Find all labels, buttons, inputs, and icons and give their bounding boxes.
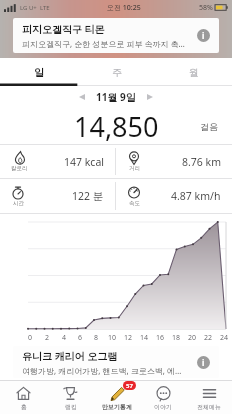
- staticText: 0: [28, 333, 33, 343]
- staticText: 속도: [129, 200, 140, 207]
- staticText: i: [202, 30, 205, 41]
- staticText: 월: [189, 66, 199, 79]
- staticText: 피지오겔직구 티몬: [22, 22, 105, 36]
- staticText: i: [202, 357, 205, 368]
- staticText: 57: [126, 382, 133, 390]
- button[interactable]: 유니크 캐리어 오그램: [13, 346, 219, 378]
- staticText: 147 kcal: [64, 155, 104, 169]
- staticText: 12: [124, 333, 133, 343]
- staticText: 2: [45, 333, 50, 343]
- button[interactable]: 속도: [116, 179, 232, 213]
- staticText: 16: [156, 333, 165, 343]
- staticText: 거리: [129, 165, 140, 172]
- button[interactable]: 랭킹: [47, 381, 94, 414]
- staticText: 6: [78, 333, 83, 343]
- staticText: 8.76 km: [182, 155, 221, 169]
- button[interactable]: 피지오겔직구 티몬: [13, 18, 219, 53]
- staticText: 22: [204, 333, 213, 343]
- staticText: 랭킹: [65, 403, 77, 411]
- button[interactable]: 거리: [116, 145, 232, 178]
- staticText: 유니크 캐리어 오그램: [22, 349, 118, 363]
- staticText: 24: [220, 333, 229, 343]
- staticText: 시간: [13, 200, 24, 207]
- staticText: 걸음: [200, 121, 218, 132]
- staticText: 오전 10:25: [107, 3, 141, 13]
- button[interactable]: 광고 정보: [197, 29, 210, 42]
- button[interactable]: 시간: [0, 179, 115, 213]
- staticText: 10: [108, 333, 117, 343]
- staticText: 4.87 km/h: [171, 189, 221, 203]
- button[interactable]: 57: [94, 381, 140, 414]
- staticText: 11월 9일: [96, 90, 136, 104]
- staticText: LG U+ LTE: [20, 4, 50, 12]
- button[interactable]: 다음 날짜: [141, 88, 159, 106]
- button[interactable]: 이야기: [140, 381, 186, 414]
- staticText: 8: [94, 333, 99, 343]
- staticText: 홈: [21, 403, 27, 411]
- staticText: 피지오겔직구, 순한 성분으로 피부 속까지 촉…: [22, 38, 185, 49]
- staticText: 58%: [199, 3, 213, 13]
- staticText: 일: [34, 66, 44, 79]
- button[interactable]: 이전 날짜: [73, 88, 91, 106]
- staticText: 4: [62, 333, 67, 343]
- staticText: 여행가방, 캐리어가방, 핸드백, 크로스백, 에…: [22, 365, 182, 376]
- staticText: 이야기: [154, 403, 172, 411]
- button[interactable]: 광고 정보: [197, 356, 210, 369]
- button[interactable]: 칼로리: [0, 145, 115, 178]
- button[interactable]: 전체메뉴: [186, 381, 232, 414]
- staticText: 주: [112, 66, 122, 79]
- staticText: 14: [140, 333, 149, 343]
- button[interactable]: 주: [78, 58, 155, 86]
- staticText: 칼로리: [11, 165, 28, 172]
- staticText: 전체메뉴: [197, 403, 221, 411]
- staticText: 122 분: [72, 189, 104, 203]
- button[interactable]: 홈: [0, 381, 47, 414]
- button[interactable]: 일: [0, 58, 78, 86]
- staticText: 만보기통계: [102, 403, 132, 411]
- staticText: 14,850: [74, 108, 159, 144]
- staticText: 20: [188, 333, 197, 343]
- button[interactable]: 월: [155, 58, 232, 86]
- staticText: 18: [172, 333, 181, 343]
